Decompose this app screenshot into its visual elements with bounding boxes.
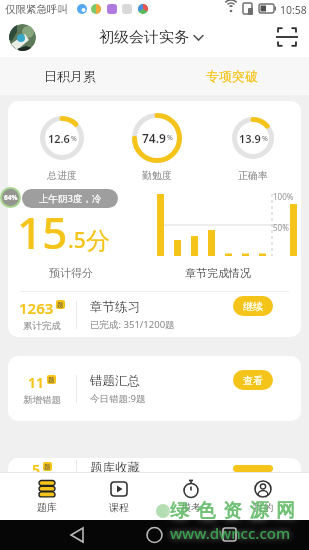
- staticText: 题库收藏: [90, 460, 140, 472]
- staticText: 我的: [253, 501, 273, 514]
- staticText: 专项突破: [206, 68, 258, 84]
- staticText: 章节练习: [90, 299, 140, 315]
- staticText: 模考: [181, 501, 201, 514]
- staticText: 50%: [273, 222, 289, 233]
- button[interactable]: 模考: [155, 473, 227, 520]
- staticText: 绿色资源网: [170, 499, 303, 523]
- staticText: 章节完成情况: [185, 266, 251, 280]
- staticText: 查看: [243, 374, 263, 387]
- button[interactable]: 查看: [233, 370, 273, 390]
- staticText: 正确率: [238, 169, 268, 182]
- button[interactable]: [277, 27, 297, 47]
- staticText: 勤勉度: [142, 169, 172, 182]
- button[interactable]: 我的: [227, 473, 299, 520]
- button[interactable]: 继续: [233, 296, 273, 316]
- staticText: 题: [57, 301, 64, 309]
- staticText: 今日错题:9题: [90, 392, 146, 405]
- staticText: 初级会计实务: [99, 28, 189, 47]
- button[interactable]: 1263: [8, 292, 301, 337]
- staticText: 11: [28, 373, 45, 392]
- staticText: 总进度: [47, 169, 77, 182]
- button[interactable]: [9, 24, 36, 51]
- staticText: .5: [68, 226, 86, 255]
- staticText: 错题汇总: [90, 373, 140, 389]
- button[interactable]: 题库: [10, 473, 83, 520]
- staticText: 题库: [37, 501, 57, 514]
- button[interactable]: 日积月累: [0, 57, 154, 95]
- staticText: 仅限紧急呼叫: [5, 3, 68, 16]
- staticText: 13.9: [239, 131, 261, 146]
- staticText: 5: [32, 460, 41, 472]
- staticText: 继续: [243, 300, 263, 313]
- staticText: 1263: [19, 298, 54, 318]
- staticText: 预计得分: [49, 266, 93, 280]
- staticText: 累计完成: [23, 320, 61, 332]
- staticText: 已完成: 351/1200题: [90, 318, 175, 331]
- staticText: %: [262, 134, 268, 144]
- button[interactable]: 专项突破: [154, 57, 309, 95]
- staticText: 日积月累: [44, 68, 96, 84]
- staticText: 分: [86, 226, 110, 256]
- staticText: 10:58: [280, 3, 307, 17]
- staticText: 新增错题: [23, 394, 61, 406]
- button[interactable]: 11: [8, 366, 301, 412]
- staticText: 上午阴3度，冷: [39, 192, 102, 205]
- staticText: 64%: [4, 193, 18, 202]
- staticText: 74.9: [142, 130, 166, 146]
- staticText: 题: [48, 376, 55, 384]
- staticText: www.dwncc.com: [170, 523, 291, 543]
- button[interactable]: 初级会计实务: [99, 28, 203, 47]
- staticText: %: [167, 133, 173, 143]
- staticText: 12.6: [48, 131, 70, 146]
- staticText: 课程: [109, 501, 129, 514]
- staticText: 15: [17, 202, 68, 262]
- staticText: 题: [44, 463, 51, 471]
- staticText: 100%: [273, 191, 294, 202]
- button[interactable]: 课程: [83, 473, 155, 520]
- staticText: %: [71, 134, 77, 144]
